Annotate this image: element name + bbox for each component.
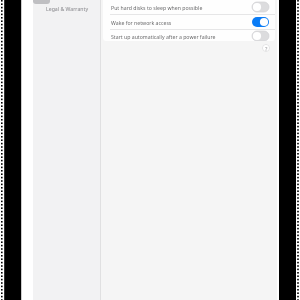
button[interactable] [33, 0, 50, 4]
button[interactable]: Toggle off [252, 2, 269, 12]
button[interactable]: Help [262, 44, 270, 52]
button[interactable]: Start up automatically after a power fai… [103, 30, 275, 41]
staticText: Put hard disks to sleep when possible [111, 4, 252, 11]
button[interactable]: Put hard disks to sleep when possible [103, 0, 275, 14]
staticText: Start up automatically after a power fai… [111, 33, 252, 40]
button[interactable]: Legal & Warranty [33, 0, 101, 14]
staticText: Legal & Warranty [46, 5, 89, 12]
button[interactable]: Toggle on [252, 17, 269, 27]
button[interactable]: Wake for network access [103, 15, 275, 29]
button[interactable]: Toggle off [252, 31, 269, 41]
staticText: ? [265, 45, 268, 52]
staticText: Wake for network access [111, 19, 252, 26]
